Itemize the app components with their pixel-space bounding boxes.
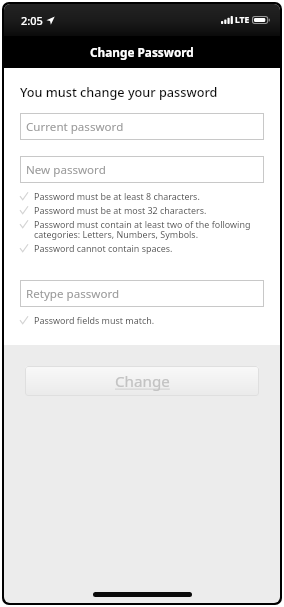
staticText: Retype password bbox=[26, 286, 120, 302]
button[interactable]: New password bbox=[20, 156, 264, 183]
staticText: You must change your password bbox=[20, 83, 218, 100]
staticText: Password cannot contain spaces. bbox=[34, 242, 173, 254]
staticText: 2:05 bbox=[21, 13, 43, 28]
staticText: LTE bbox=[235, 14, 250, 26]
staticText: Password fields must match. bbox=[34, 314, 155, 326]
staticText: Password must contain at least two of th… bbox=[34, 218, 251, 241]
staticText: Change bbox=[115, 371, 170, 392]
staticText: Change Password bbox=[90, 44, 194, 60]
staticText: New password bbox=[26, 162, 106, 178]
staticText: Password must be at least 8 characters. bbox=[34, 190, 200, 202]
button[interactable]: Change bbox=[25, 366, 259, 396]
button[interactable]: Retype password bbox=[20, 280, 264, 307]
button[interactable]: Current password bbox=[20, 113, 264, 140]
staticText: Current password bbox=[26, 119, 124, 135]
staticText: Password must be at most 32 characters. bbox=[34, 204, 207, 216]
